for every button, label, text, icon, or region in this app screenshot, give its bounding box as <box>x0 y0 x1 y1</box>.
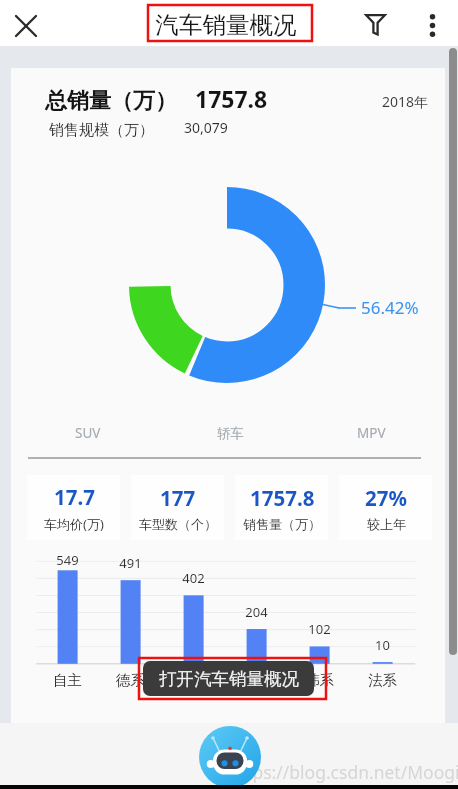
staticText: 1757.8 <box>250 484 315 512</box>
staticText: 177 <box>160 484 196 512</box>
staticText: 30,079 <box>184 118 228 137</box>
staticText: 韩系 <box>305 671 334 689</box>
staticText: 2018年 <box>382 92 429 111</box>
button[interactable]: 韩系 <box>288 669 351 691</box>
staticText: 549 <box>36 551 99 569</box>
button[interactable]: 日系 <box>225 669 288 691</box>
staticText: 491 <box>99 554 162 572</box>
staticText: MPV <box>357 424 386 442</box>
staticText: 102 <box>288 620 351 638</box>
staticText: 汽车销量概况 <box>126 10 326 40</box>
staticText: https://blog.csdn.net/Moogical <box>229 760 458 784</box>
staticText: 日系 <box>242 671 271 689</box>
staticText: 1757.8 <box>195 83 268 114</box>
staticText: 较上年 <box>367 516 406 532</box>
staticText: SUV <box>75 424 101 442</box>
button[interactable]: Assistant <box>199 726 261 788</box>
staticText: 10 <box>351 636 414 654</box>
button[interactable]: 美系 <box>162 669 225 691</box>
staticText: 402 <box>162 569 225 587</box>
staticText: 总销量（万） <box>45 87 177 115</box>
staticText: 轿车 <box>217 425 244 442</box>
staticText: 56.42% <box>361 296 419 319</box>
staticText: 27% <box>365 484 407 512</box>
button[interactable]: 法系 <box>351 669 414 691</box>
staticText: 17.7 <box>54 483 95 511</box>
staticText: 销售量（万） <box>243 516 321 532</box>
button[interactable]: MPV <box>326 421 416 445</box>
button[interactable]: 轿车 <box>185 421 275 445</box>
staticText: 自主 <box>53 671 82 689</box>
staticText: 车均价(万) <box>44 515 104 533</box>
button[interactable]: 德系 <box>99 669 162 691</box>
button[interactable]: 177 <box>131 475 224 540</box>
staticText: 打开汽车销量概况 <box>159 668 299 690</box>
button[interactable]: SUV <box>43 421 133 445</box>
button[interactable]: Filter <box>352 0 398 46</box>
button[interactable]: 打开汽车销量概况 <box>143 661 314 696</box>
staticText: 德系 <box>116 671 145 689</box>
button[interactable]: More options <box>408 0 454 46</box>
button[interactable]: 27% <box>339 475 432 540</box>
button[interactable]: 1757.8 <box>235 475 328 540</box>
button[interactable]: 自主 <box>36 669 99 691</box>
staticText: 销售规模（万） <box>49 121 154 140</box>
button[interactable]: Close <box>2 0 48 46</box>
staticText: 204 <box>225 603 288 621</box>
staticText: 美系 <box>179 671 208 689</box>
staticText: 法系 <box>368 671 397 689</box>
staticText: 车型数（个） <box>139 516 217 532</box>
button[interactable]: 17.7 <box>27 475 120 540</box>
